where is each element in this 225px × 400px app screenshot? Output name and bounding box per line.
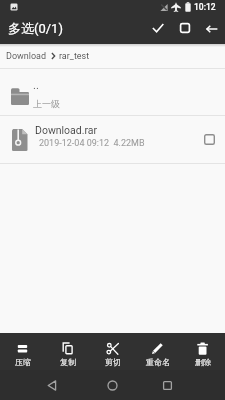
staticText: 上一级 [33,98,60,109]
button[interactable] [198,14,225,44]
staticText: .. [33,79,39,92]
staticText: rar_test [59,51,90,62]
button[interactable]: 压缩 [0,333,45,370]
staticText: 2019-12-04 09:12 4.22MB [39,138,145,149]
button[interactable]: .. [0,69,225,115]
staticText: Download.rar [35,124,98,136]
staticText: 10:12 [194,2,216,12]
staticText: 压缩 [15,357,31,367]
staticText: 多选(0/1) [8,20,63,36]
button[interactable] [92,370,132,400]
staticText: 重命名 [146,357,170,367]
button[interactable] [147,370,187,400]
staticText: 剪切 [105,357,121,367]
button[interactable] [32,370,72,400]
button[interactable] [144,14,171,44]
button[interactable]: Download.rar [0,116,225,163]
staticText: 删除 [195,357,211,367]
button[interactable]: 复制 [45,333,90,370]
staticText: 复制 [60,357,76,367]
staticText: Download [6,51,47,62]
button[interactable] [171,14,198,44]
button[interactable] [196,116,222,163]
button[interactable]: 重命名 [135,333,180,370]
button[interactable]: 剪切 [90,333,135,370]
button[interactable]: 删除 [180,333,225,370]
button[interactable]: Download [0,44,225,68]
